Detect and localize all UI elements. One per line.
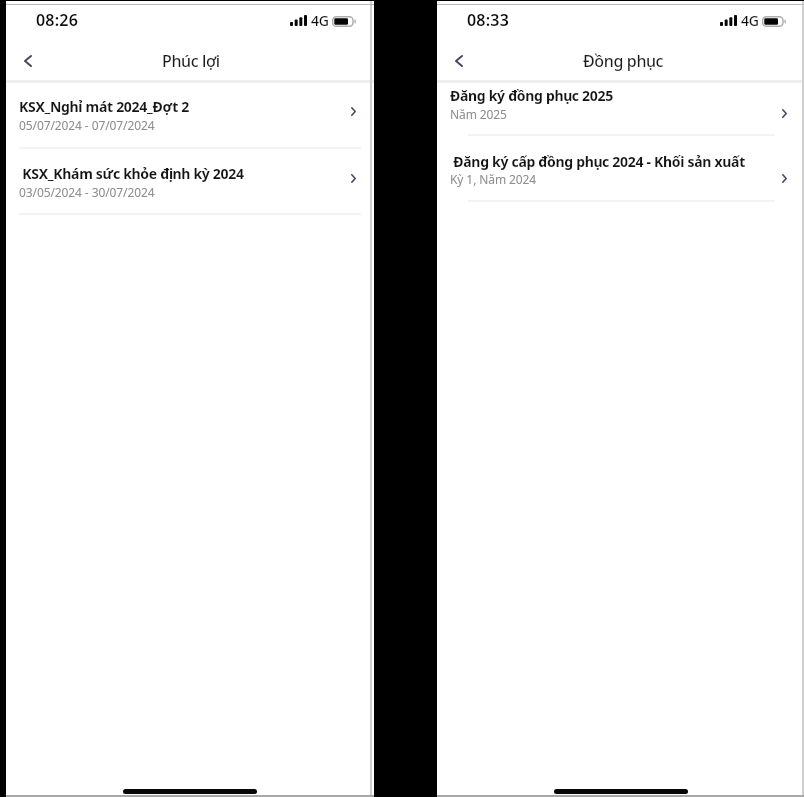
- staticText: 08:26: [36, 9, 79, 31]
- button[interactable]: Đăng ký cấp đồng phục 2024 - Khối sản xu…: [437, 136, 804, 201]
- staticText: Đăng ký cấp đồng phục 2024 - Khối sản xu…: [450, 152, 745, 171]
- staticText: KSX_Khám sức khỏe định kỳ 2024: [19, 164, 244, 183]
- staticText: Đồng phục: [583, 50, 663, 72]
- staticText: Kỳ 1, Năm 2024: [450, 171, 537, 187]
- staticText: 03/05/2024 - 30/07/2024: [19, 184, 155, 200]
- other: Cellular signal: [720, 15, 737, 26]
- staticText: Phúc lợi: [162, 50, 220, 72]
- staticText: 4G: [741, 11, 759, 30]
- staticText: 08:33: [467, 9, 510, 31]
- button[interactable]: Back: [11, 44, 45, 78]
- other: Cellular signal: [290, 15, 307, 26]
- staticText: Năm 2025: [450, 106, 507, 122]
- staticText: 05/07/2024 - 07/07/2024: [19, 117, 155, 133]
- staticText: KSX_Nghỉ mát 2024_Đợt 2: [19, 97, 190, 116]
- other: Battery: [762, 16, 786, 27]
- button[interactable]: KSX_Khám sức khỏe định kỳ 2024: [6, 149, 374, 213]
- button[interactable]: Back: [442, 44, 476, 78]
- staticText: Đăng ký đồng phục 2025: [450, 86, 613, 105]
- staticText: 4G: [311, 11, 329, 30]
- button[interactable]: Đăng ký đồng phục 2025: [437, 83, 804, 134]
- other: Battery: [332, 16, 356, 27]
- button[interactable]: KSX_Nghỉ mát 2024_Đợt 2: [6, 83, 374, 147]
